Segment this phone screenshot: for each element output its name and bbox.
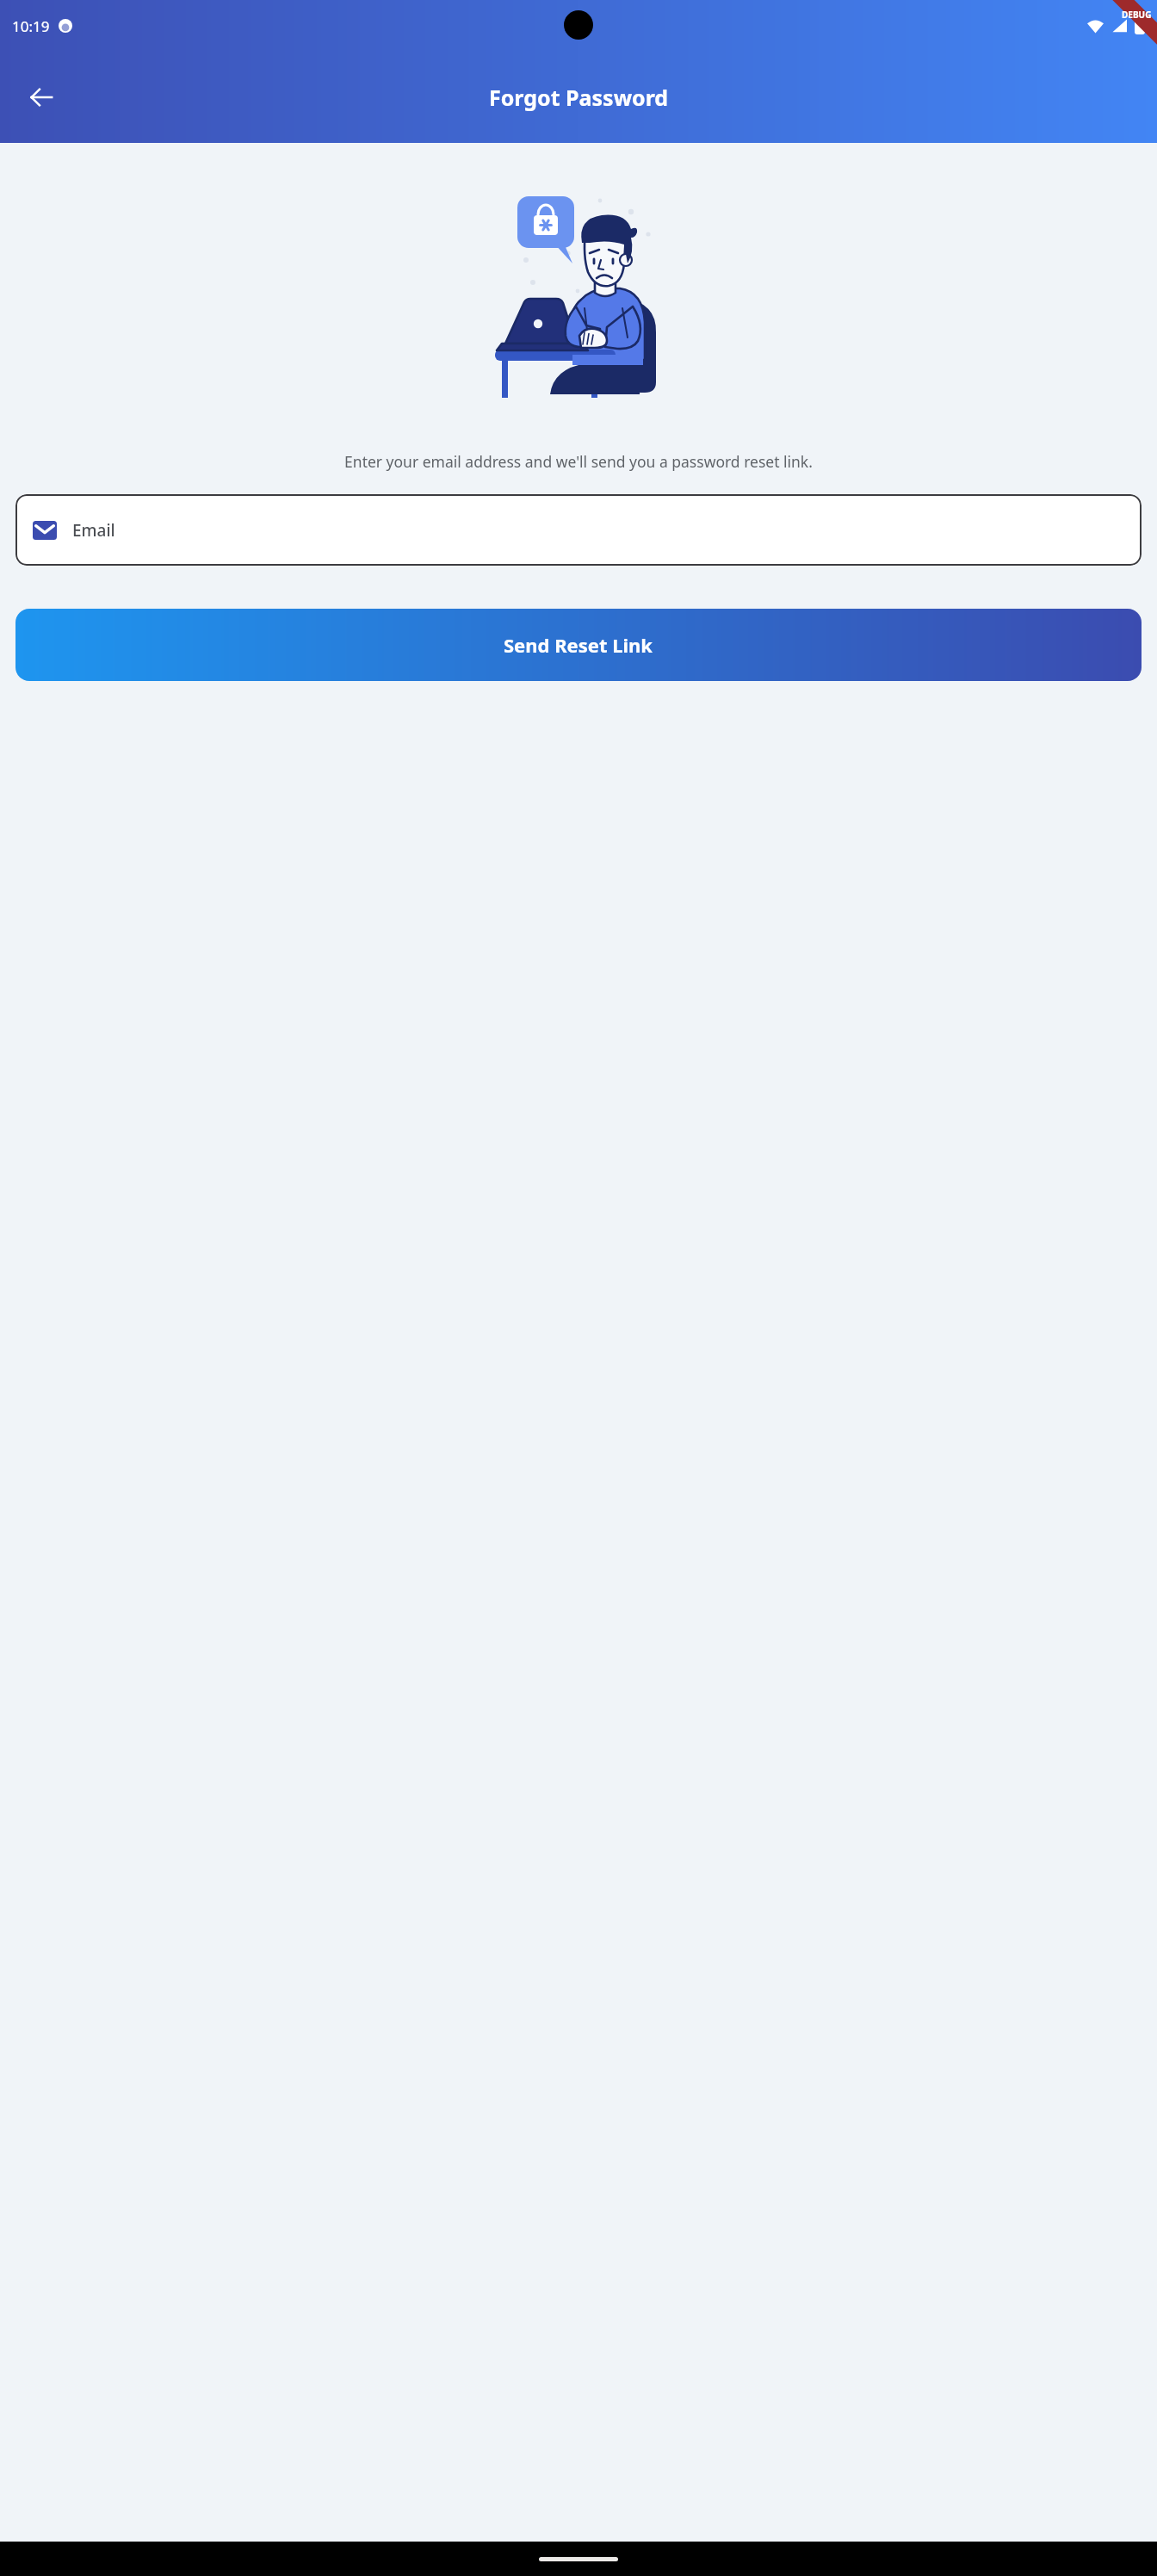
button[interactable]: Email — [15, 494, 1142, 566]
staticText: DEBUG — [1122, 9, 1152, 21]
staticText: Send Reset Link — [504, 632, 653, 658]
button[interactable]: Send Reset Link — [15, 609, 1142, 681]
staticText: Enter your email address and we'll send … — [344, 451, 813, 472]
button[interactable]: Back — [17, 73, 65, 121]
staticText: Email — [72, 519, 115, 542]
staticText: 10:19 — [12, 16, 50, 36]
staticText: Forgot Password — [489, 83, 669, 112]
